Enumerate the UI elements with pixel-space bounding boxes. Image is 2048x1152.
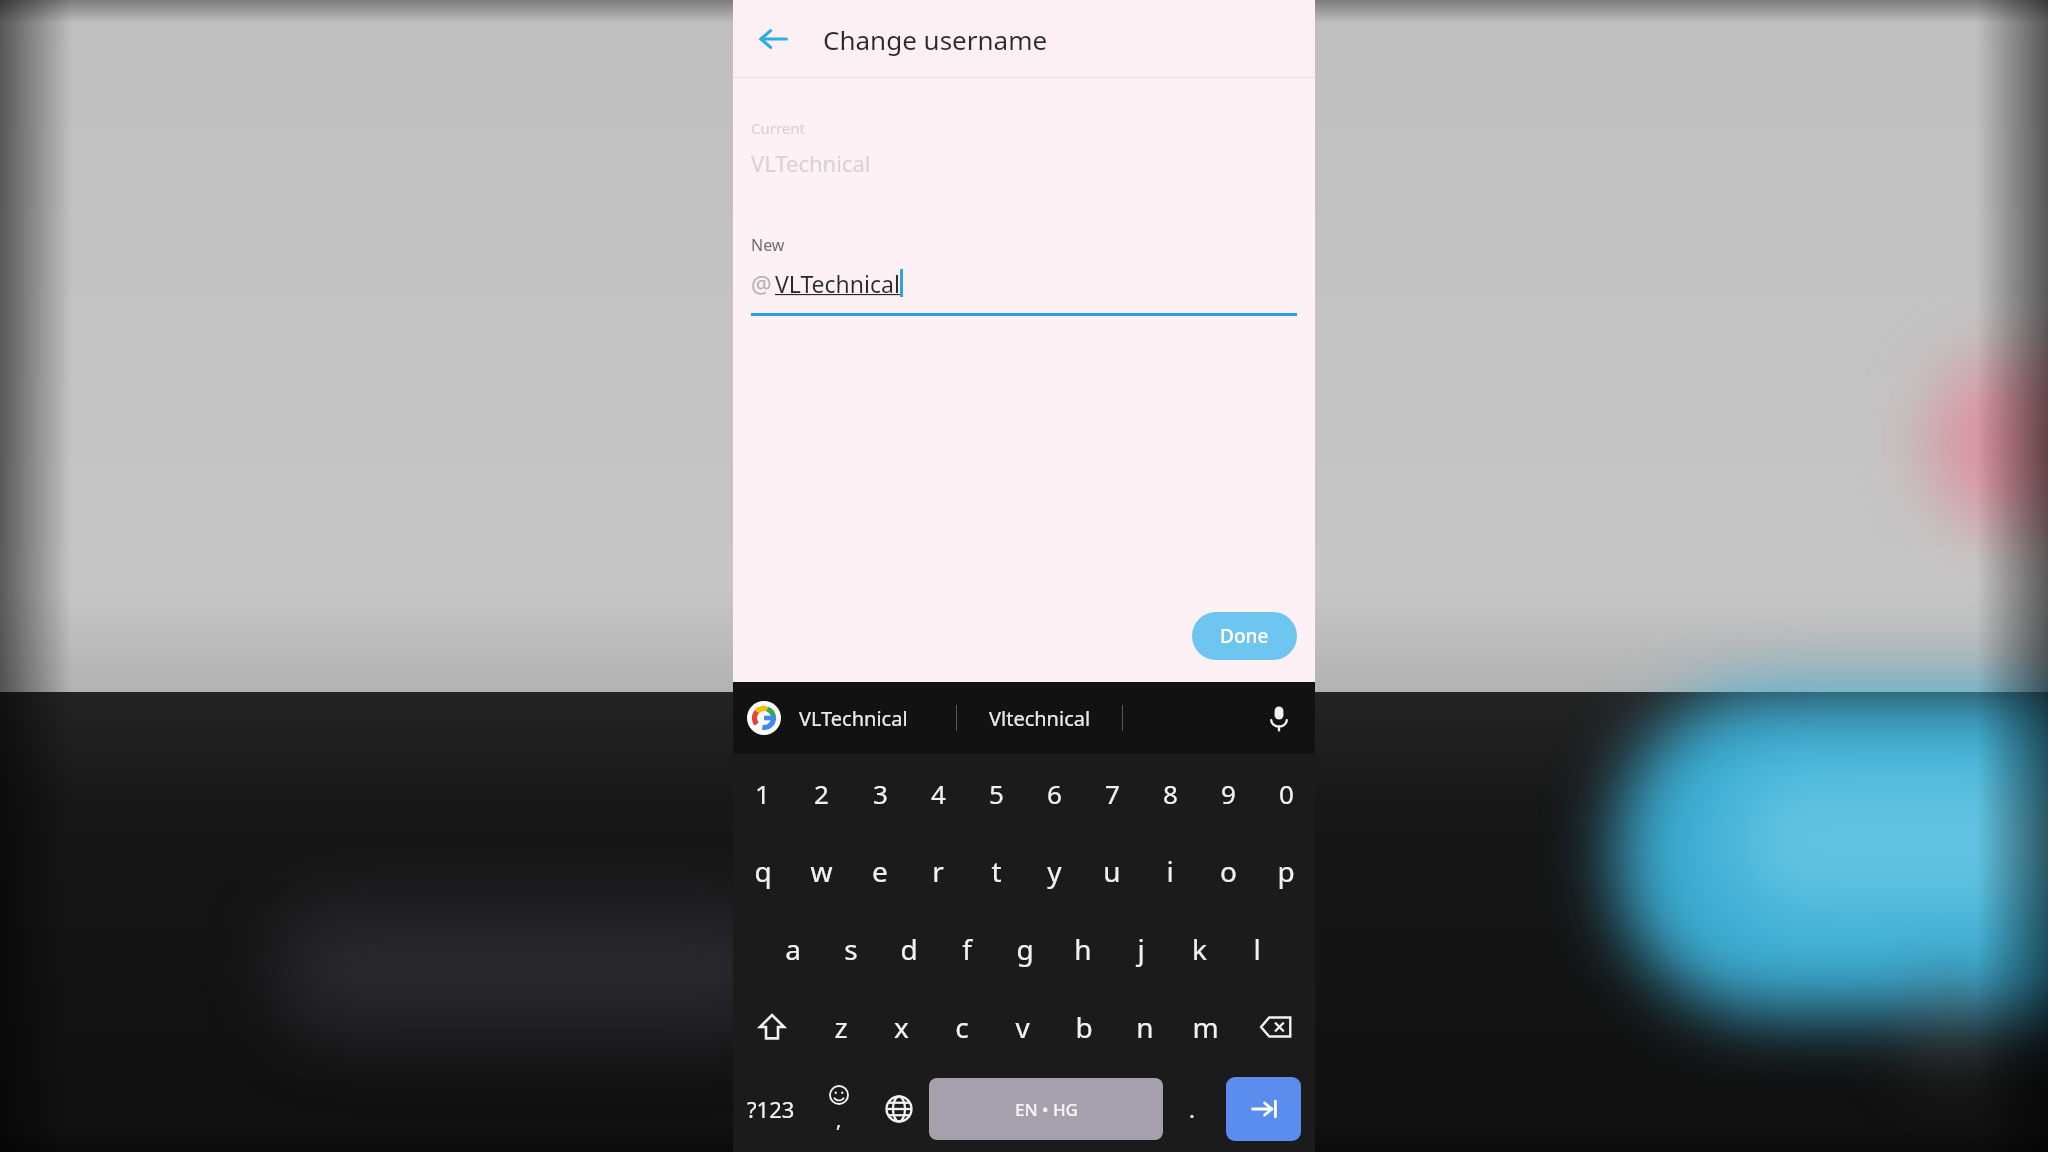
staticText: o [1220, 852, 1237, 890]
button[interactable]: g [996, 910, 1054, 988]
button[interactable]: @ [751, 268, 1297, 299]
button[interactable]: 2 [792, 754, 851, 832]
staticText: t [991, 852, 1002, 890]
staticText: EN • HG [1015, 1098, 1078, 1121]
staticText: . [1189, 1094, 1195, 1124]
staticText: a [785, 930, 801, 968]
staticText: 0 [1279, 776, 1294, 811]
button[interactable]: r [909, 832, 967, 910]
button[interactable]: 0 [1257, 754, 1315, 832]
staticText: VLTechnical [799, 705, 908, 732]
button[interactable]: s [822, 910, 880, 988]
staticText: n [1136, 1008, 1154, 1046]
button[interactable]: x [871, 988, 931, 1066]
button[interactable]: e [851, 832, 909, 910]
button[interactable]: l [1228, 910, 1286, 988]
staticText: w [810, 852, 833, 890]
staticText: Current [751, 118, 805, 138]
staticText: 9 [1221, 776, 1236, 811]
button[interactable]: Voice input [1257, 696, 1301, 740]
button[interactable]: . [1163, 1066, 1220, 1152]
button[interactable]: Shift [733, 988, 811, 1066]
staticText: g [1016, 930, 1034, 968]
button[interactable]: f [938, 910, 996, 988]
button[interactable]: u [1083, 832, 1141, 910]
button[interactable]: z [811, 988, 871, 1066]
button[interactable]: 1 [733, 754, 792, 832]
button[interactable]: n [1114, 988, 1175, 1066]
staticText: , [836, 1106, 842, 1133]
button[interactable]: d [880, 910, 938, 988]
button[interactable]: Vltechnical [957, 682, 1122, 754]
button[interactable]: Back [745, 11, 801, 67]
staticText: ?123 [747, 1094, 795, 1124]
staticText: r [932, 852, 944, 890]
staticText: p [1277, 852, 1295, 890]
staticText: 8 [1163, 776, 1178, 811]
button[interactable]: h [1054, 910, 1112, 988]
button[interactable]: Done [1192, 612, 1297, 660]
staticText: d [900, 930, 918, 968]
button[interactable]: j [1112, 910, 1170, 988]
button[interactable]: k [1170, 910, 1228, 988]
button[interactable]: 7 [1083, 754, 1141, 832]
button[interactable]: a [763, 910, 822, 988]
staticText: h [1074, 930, 1092, 968]
button[interactable]: v [992, 988, 1053, 1066]
button[interactable]: 8 [1141, 754, 1199, 832]
button[interactable]: o [1199, 832, 1257, 910]
staticText: 5 [989, 776, 1004, 811]
button[interactable]: 6 [1025, 754, 1083, 832]
button[interactable]: 3 [851, 754, 909, 832]
button[interactable]: 4 [909, 754, 967, 832]
staticText: Change username [823, 22, 1048, 57]
staticText: c [955, 1008, 969, 1046]
button[interactable]: c [931, 988, 992, 1066]
staticText: Vltechnical [989, 705, 1091, 732]
button[interactable]: m [1175, 988, 1236, 1066]
button[interactable]: Emoji [809, 1066, 869, 1152]
staticText: x [894, 1008, 909, 1046]
button[interactable]: VLTechnical [799, 682, 956, 754]
staticText: s [844, 930, 858, 968]
staticText: 1 [755, 776, 770, 811]
button[interactable]: EN • HG [929, 1078, 1163, 1140]
staticText: 6 [1047, 776, 1062, 811]
staticText: i [1166, 852, 1174, 890]
button[interactable]: y [1025, 832, 1083, 910]
button[interactable]: 5 [967, 754, 1025, 832]
staticText: k [1192, 930, 1207, 968]
button[interactable]: Change language [869, 1066, 929, 1152]
staticText: 2 [814, 776, 829, 811]
button[interactable]: t [967, 832, 1025, 910]
staticText: m [1192, 1008, 1219, 1046]
staticText: 7 [1105, 776, 1120, 811]
staticText: 4 [931, 776, 946, 811]
staticText: j [1137, 930, 1145, 968]
staticText: e [872, 852, 888, 890]
button[interactable]: w [792, 832, 851, 910]
staticText: VLTechnical [775, 268, 900, 299]
button[interactable]: p [1257, 832, 1315, 910]
button[interactable]: q [733, 832, 792, 910]
staticText: New [751, 234, 785, 256]
button[interactable]: Next [1226, 1077, 1301, 1141]
staticText: b [1075, 1008, 1093, 1046]
staticText: y [1047, 852, 1062, 890]
staticText: u [1103, 852, 1121, 890]
staticText: f [962, 930, 972, 968]
staticText: q [754, 852, 772, 890]
staticText: l [1253, 930, 1261, 968]
staticText: 3 [873, 776, 888, 811]
staticText: v [1015, 1008, 1030, 1046]
staticText: VLTechnical [751, 148, 871, 178]
staticText: @ [751, 268, 772, 299]
staticText: z [834, 1008, 848, 1046]
button[interactable]: Backspace [1236, 988, 1315, 1066]
button[interactable]: 9 [1199, 754, 1257, 832]
button[interactable]: i [1141, 832, 1199, 910]
button[interactable]: b [1053, 988, 1114, 1066]
staticText: Done [1220, 623, 1269, 649]
button[interactable]: ?123 [733, 1066, 809, 1152]
